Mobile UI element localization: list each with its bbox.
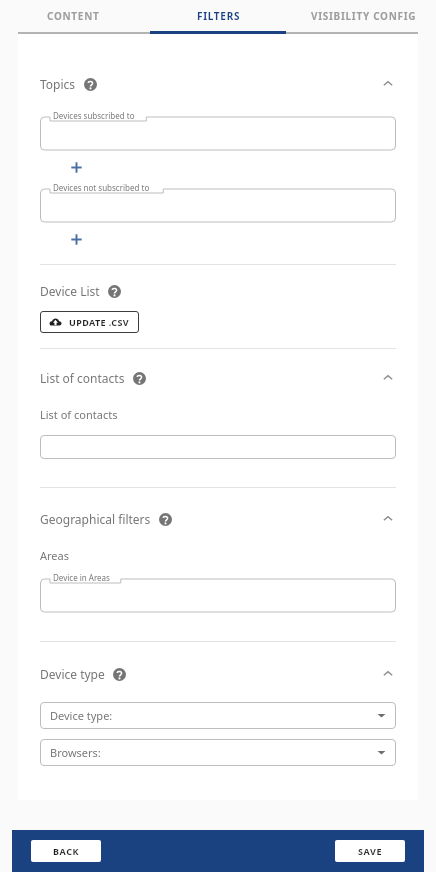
other: Collapse section	[380, 370, 396, 386]
staticText: CONTENT	[47, 9, 100, 23]
button[interactable]: Device type	[40, 664, 396, 684]
staticText: BACK	[53, 845, 80, 857]
staticText: Areas	[40, 548, 69, 563]
button[interactable]: FILTERS	[146, 0, 291, 31]
button[interactable]: Device List	[40, 281, 396, 301]
button[interactable]: CONTENT	[0, 0, 146, 31]
button[interactable]	[40, 435, 396, 459]
staticText: Device List	[40, 283, 100, 299]
staticText: Devices subscribed to	[53, 110, 135, 121]
button[interactable]: Device type:	[40, 702, 396, 729]
button[interactable]: Devices not subscribed to	[40, 183, 396, 223]
button[interactable]: Devices subscribed to	[40, 111, 396, 151]
other: Collapse section	[380, 76, 396, 92]
button[interactable]: Device in Areas	[40, 573, 396, 613]
staticText: FILTERS	[197, 9, 241, 23]
staticText: Devices not subscribed to	[53, 182, 150, 193]
staticText: Geographical filters	[40, 511, 151, 527]
staticText: Device in Areas	[53, 572, 110, 583]
other: Collapse section	[380, 666, 396, 682]
staticText: List of contacts	[40, 370, 125, 386]
staticText: Topics	[40, 76, 76, 92]
button[interactable]: List of contacts	[40, 368, 396, 388]
staticText: UPDATE .CSV	[69, 316, 130, 328]
staticText: VISIBILITY CONFIG	[311, 9, 417, 23]
button[interactable]: Geographical filters	[40, 509, 396, 529]
staticText: Device type:	[50, 708, 113, 723]
staticText: Device type	[40, 666, 105, 682]
staticText: List of contacts	[40, 407, 118, 422]
button[interactable]: Add	[64, 155, 88, 179]
staticText: SAVE	[358, 845, 383, 857]
button[interactable]: SAVE	[335, 840, 405, 862]
button[interactable]: BACK	[31, 840, 101, 862]
other: Collapse section	[380, 511, 396, 527]
button[interactable]: Topics	[40, 74, 396, 94]
button[interactable]: UPDATE .CSV	[40, 311, 139, 333]
button[interactable]: Browsers:	[40, 739, 396, 766]
button[interactable]: Add	[64, 227, 88, 251]
button[interactable]: VISIBILITY CONFIG	[291, 0, 436, 31]
staticText: Browsers:	[50, 745, 101, 760]
